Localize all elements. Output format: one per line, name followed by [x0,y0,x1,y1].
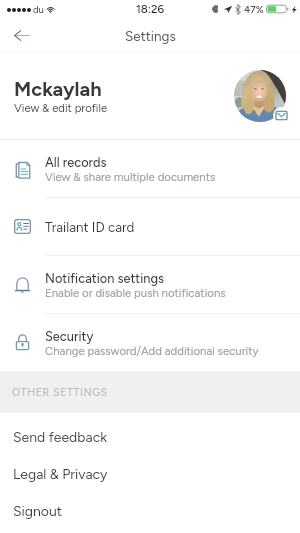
staticText: Mckaylah [14,77,102,101]
staticText: View & share multiple documents [45,170,216,184]
button[interactable]: Send feedback [0,419,300,456]
staticText: Notification settings [45,271,165,286]
button[interactable]: Trailant ID card [0,198,300,255]
button[interactable]: Back [8,21,36,49]
button[interactable]: Mckaylah [0,52,300,139]
staticText: Send feedback [13,429,108,446]
staticText: Security [45,329,94,344]
staticText: All records [45,155,107,170]
staticText: Legal & Privacy [13,466,108,483]
staticText: 47% [244,3,264,15]
staticText: Signout [13,503,63,520]
button[interactable]: Messages [273,107,290,124]
staticText: 18:26 [136,2,164,16]
staticText: Change password/Add additional security [45,344,259,358]
staticText: OTHER SETTINGS [12,386,108,399]
staticText: du [33,4,44,15]
button[interactable]: Security [0,314,300,371]
button[interactable]: Signout [0,493,300,530]
button[interactable]: All records [0,140,300,197]
staticText: Enable or disable push notifications [45,286,226,300]
staticText: Trailant ID card [45,219,135,235]
button[interactable]: Notification settings [0,256,300,313]
staticText: View & edit profile [14,101,108,115]
button[interactable]: Legal & Privacy [0,456,300,493]
staticText: Settings [125,28,176,44]
